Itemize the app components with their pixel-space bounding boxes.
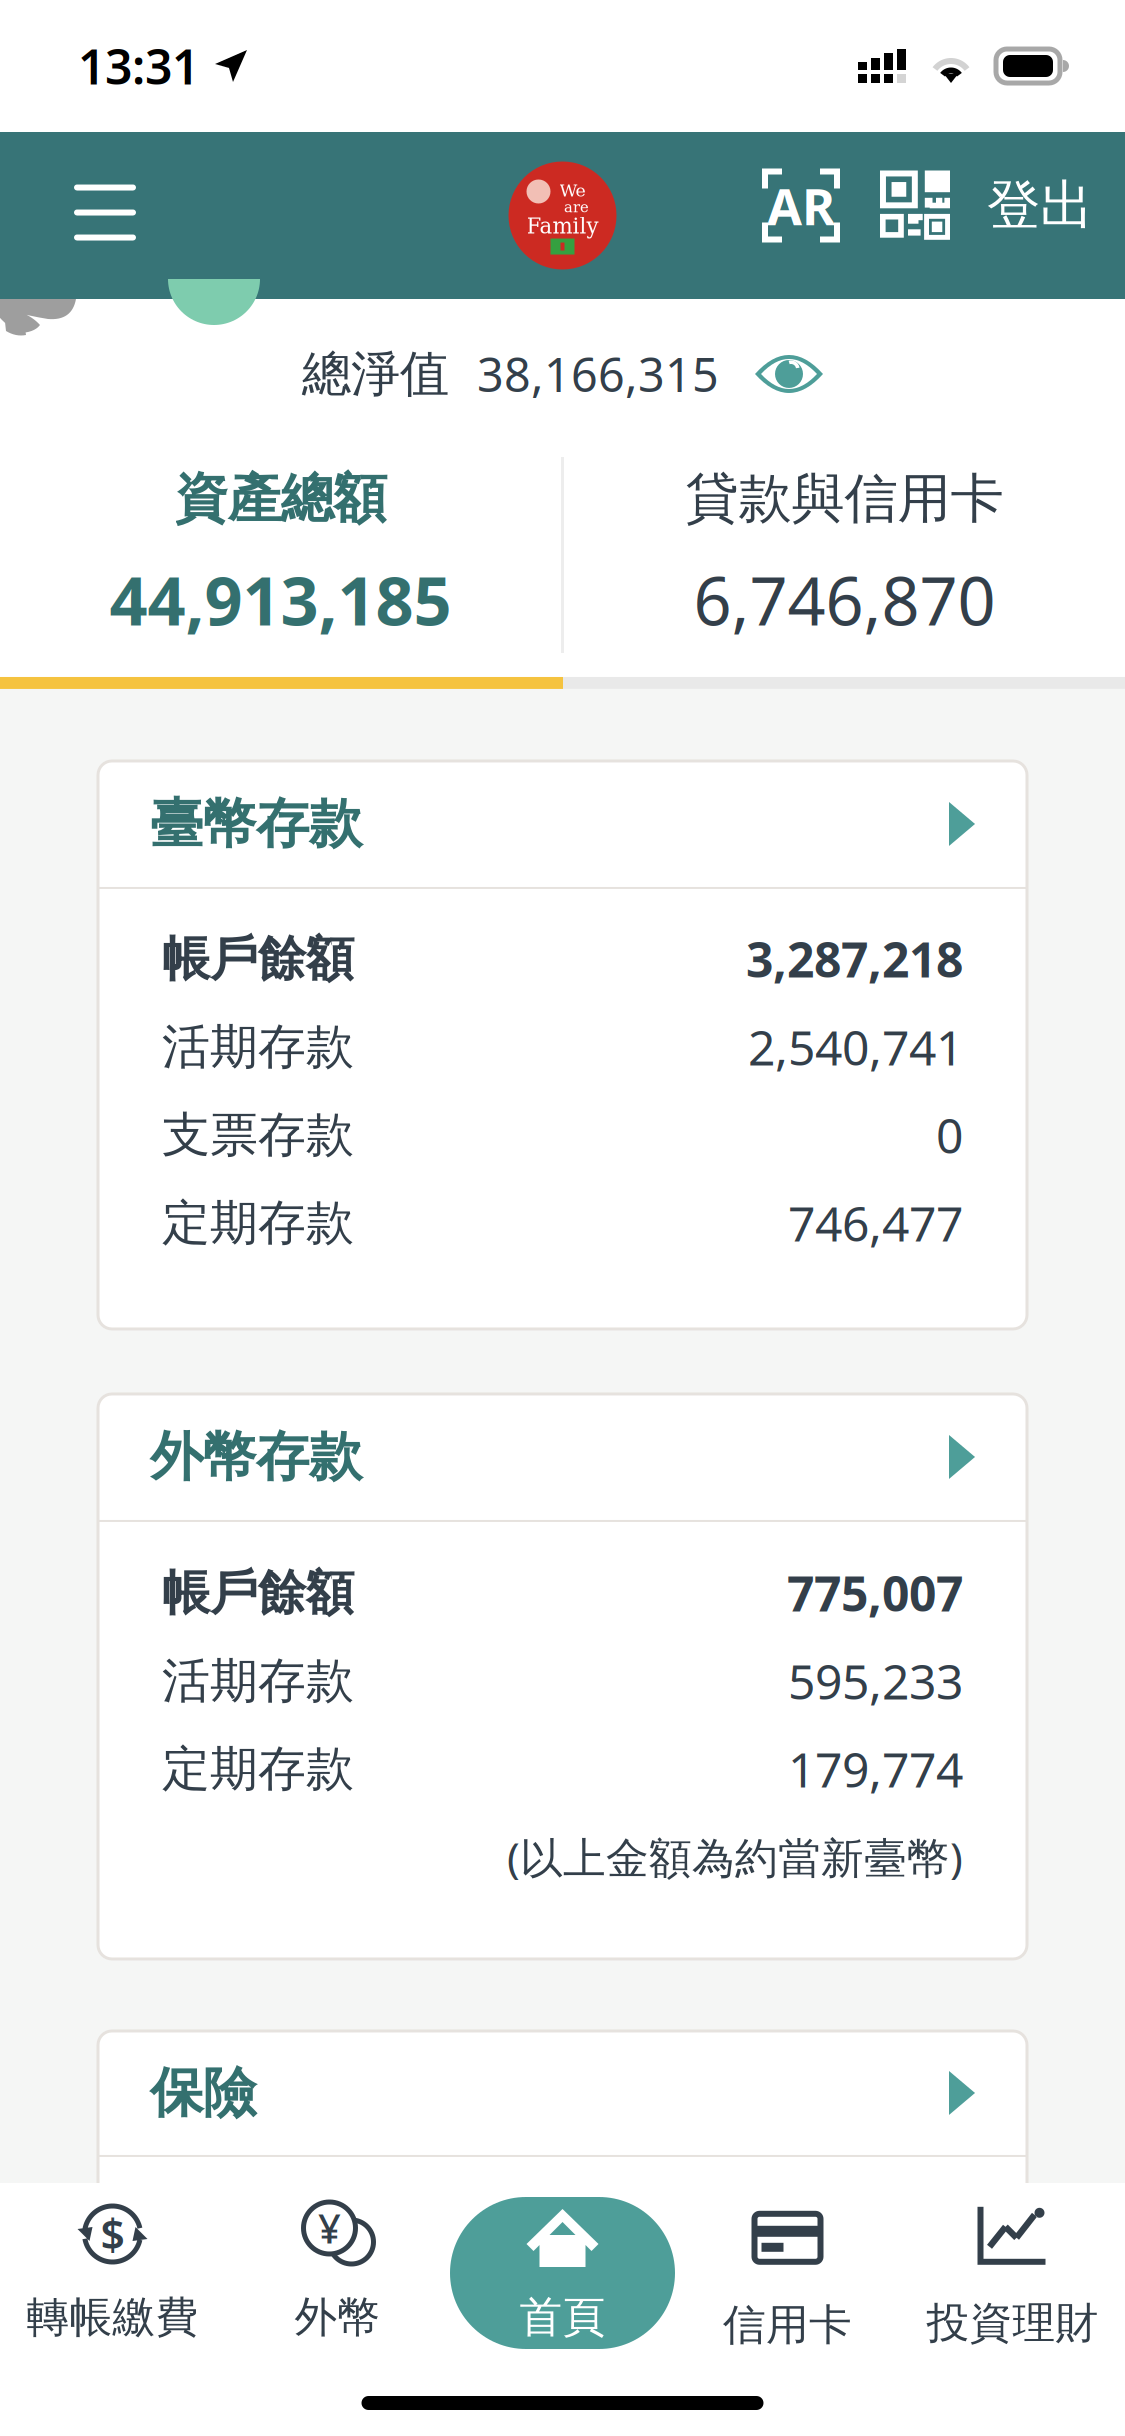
button[interactable]: 保險 <box>98 2030 1027 2156</box>
staticText: 登出 <box>987 173 1093 238</box>
staticText: 貸款與信用卡 <box>685 466 1003 531</box>
staticText: 746,477 <box>788 1191 963 1255</box>
staticText: 775,007 <box>787 1561 963 1625</box>
button[interactable]: $ <box>0 2197 225 2349</box>
staticText: 資產總額 <box>174 466 386 531</box>
staticText: 定期存款 <box>162 1739 354 1798</box>
staticText: 支票存款 <box>162 1105 354 1164</box>
staticText: 活期存款 <box>162 1017 354 1076</box>
staticText: 首頁 <box>519 2291 605 2343</box>
staticText: are <box>564 199 589 216</box>
button[interactable]: 登出 <box>987 155 1093 255</box>
staticText: ¥ <box>318 2201 341 2254</box>
staticText: 0 <box>936 1103 963 1167</box>
staticText: 44,913,185 <box>109 555 451 644</box>
button[interactable]: 信用卡 <box>675 2197 900 2349</box>
staticText: 帳戶餘額 <box>162 929 354 988</box>
staticText: 2,540,741 <box>748 1015 963 1079</box>
staticText: 臺幣存款 <box>150 791 362 857</box>
staticText: 總淨值 <box>302 344 449 404</box>
button[interactable]: QR Code <box>877 155 953 255</box>
staticText: 38,166,315 <box>477 343 719 405</box>
staticText: 外幣存款 <box>150 1424 362 1490</box>
button[interactable]: 投資理財 <box>900 2197 1125 2349</box>
staticText: (以上金額為約當新臺幣) <box>507 1829 963 1885</box>
button[interactable]: 臺幣存款 <box>98 761 1027 887</box>
staticText: 定期存款 <box>162 1193 354 1252</box>
staticText: $ <box>100 2206 124 2262</box>
staticText: 179,774 <box>788 1737 963 1801</box>
staticText: 轉帳繳費 <box>26 2291 198 2343</box>
button[interactable]: 首頁 <box>450 2197 675 2349</box>
staticText: 3,287,218 <box>746 927 963 991</box>
staticText: 投資理財 <box>926 2297 1098 2349</box>
button[interactable]: 外幣存款 <box>98 1394 1027 1520</box>
button[interactable]: AR <box>759 155 843 255</box>
staticText: 外幣 <box>294 2291 380 2343</box>
staticText: 13:31 <box>78 34 199 98</box>
button[interactable]: Menu <box>50 155 160 255</box>
staticText: 595,233 <box>788 1649 963 1713</box>
staticText: 活期存款 <box>162 1651 354 1710</box>
staticText: 信用卡 <box>723 2299 852 2351</box>
staticText: 6,746,870 <box>693 555 995 644</box>
staticText: 帳戶餘額 <box>162 1563 354 1622</box>
staticText: We <box>559 180 585 201</box>
staticText: AR <box>767 172 835 239</box>
button[interactable]: ¥ <box>225 2197 450 2349</box>
staticText: 保險 <box>150 2060 256 2126</box>
staticText: Family <box>526 214 598 238</box>
